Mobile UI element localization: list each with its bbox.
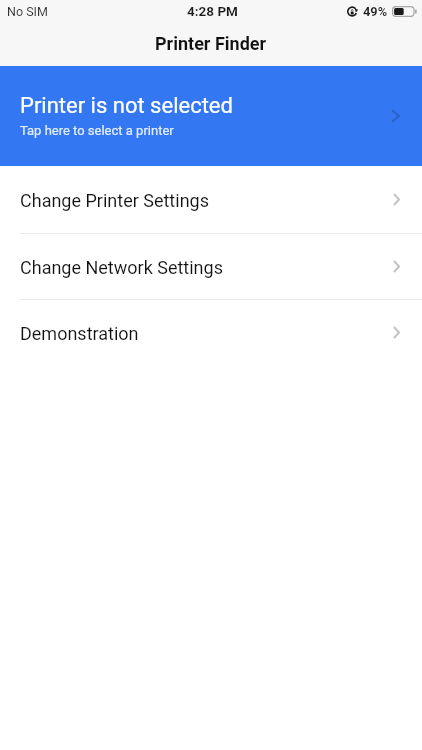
other: Battery 49 percent <box>392 6 417 17</box>
other: Rotation lock <box>347 6 358 17</box>
button[interactable]: Demonstration <box>0 300 422 365</box>
staticText: Change Network Settings <box>20 257 223 278</box>
button[interactable]: Change Printer Settings <box>0 166 422 233</box>
button[interactable]: Change Network Settings <box>0 234 422 299</box>
staticText: Printer is not selected <box>20 93 233 119</box>
staticText: 4:28 PM <box>187 3 238 19</box>
staticText: Tap here to select a printer <box>20 123 174 138</box>
staticText: Demonstration <box>20 323 139 344</box>
button[interactable]: Printer is not selected <box>0 66 422 166</box>
staticText: 49% <box>363 4 388 19</box>
staticText: No SIM <box>7 4 48 19</box>
other: Select a printer <box>391 109 400 123</box>
staticText: Printer Finder <box>155 33 267 54</box>
staticText: Change Printer Settings <box>20 190 209 211</box>
